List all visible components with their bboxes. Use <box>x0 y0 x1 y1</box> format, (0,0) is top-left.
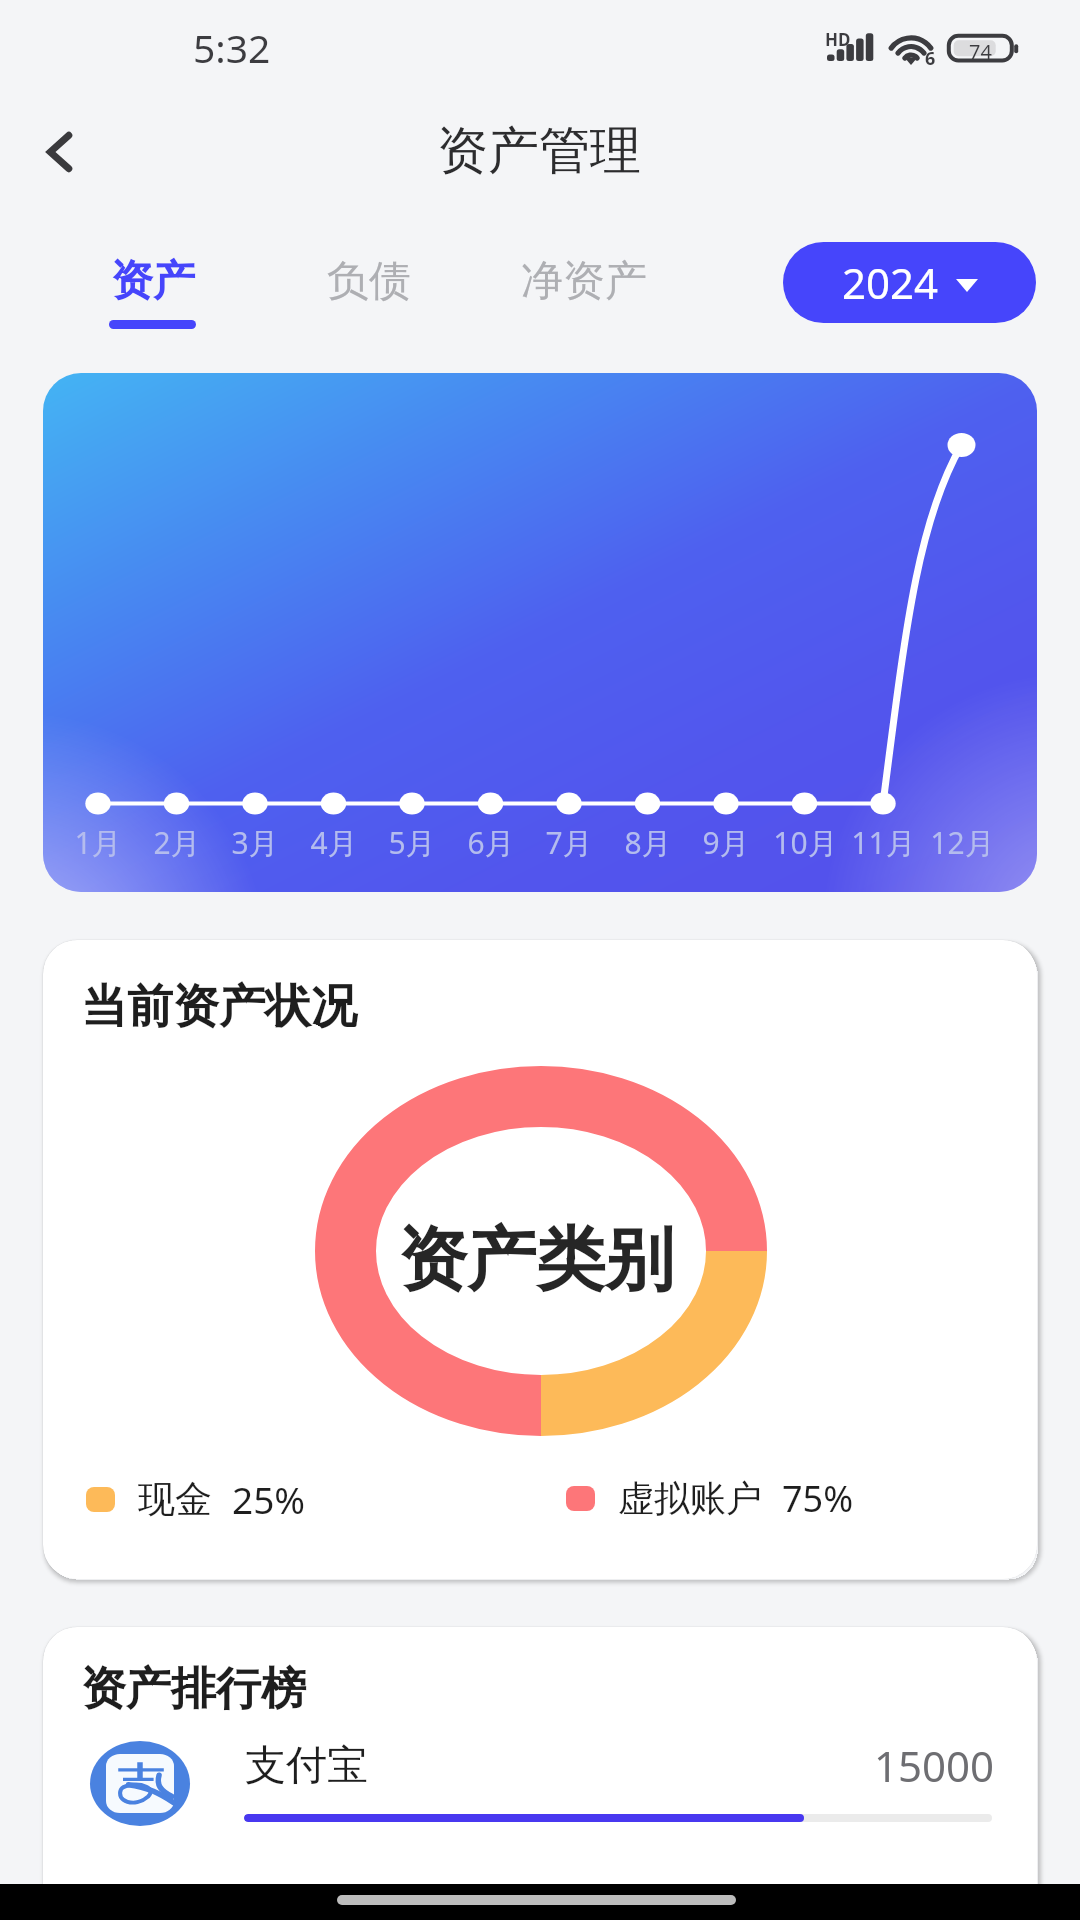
staticText: 11月 <box>851 822 916 863</box>
staticText: 12月 <box>930 822 995 863</box>
staticText: 2024 <box>842 254 939 311</box>
staticText: 8月 <box>624 822 672 863</box>
staticText: 净资产 <box>521 255 647 308</box>
button[interactable]: Back <box>24 116 96 188</box>
staticText: 3月 <box>231 822 279 863</box>
staticText: 当前资产状况 <box>81 978 357 1036</box>
button[interactable]: 支付宝 <box>43 1723 1037 1853</box>
staticText: 74 <box>969 38 992 65</box>
staticText: 9月 <box>702 822 750 863</box>
button[interactable]: 负债 <box>312 240 424 312</box>
button[interactable]: 2024 <box>783 242 1036 323</box>
staticText: 7月 <box>545 822 593 863</box>
button[interactable]: 1月 <box>43 373 1037 892</box>
staticText: 5月 <box>388 822 436 863</box>
staticText: 6月 <box>467 822 515 863</box>
staticText: 1月 <box>74 822 122 863</box>
staticText: HD <box>825 28 851 51</box>
staticText: 资产类别 <box>398 1217 674 1304</box>
staticText: 6 <box>925 46 936 71</box>
button[interactable]: 资产 <box>96 240 208 336</box>
staticText: 资产管理 <box>437 119 641 183</box>
staticText: 10月 <box>773 822 838 863</box>
staticText: 虚拟账户 <box>618 1476 762 1521</box>
staticText: 资产排行榜 <box>81 1661 306 1718</box>
staticText: 2月 <box>153 822 201 863</box>
staticText: 15000 <box>874 1737 995 1794</box>
staticText: 现金 <box>138 1476 212 1523</box>
staticText: 负债 <box>327 255 411 308</box>
staticText: 25% <box>232 1474 306 1524</box>
staticText: 4月 <box>310 822 358 863</box>
staticText: 资产 <box>111 255 195 308</box>
button[interactable]: 净资产 <box>506 240 662 312</box>
staticText: 75% <box>782 1474 854 1523</box>
staticText: 5:32 <box>193 21 271 74</box>
staticText: 支付宝 <box>245 1740 368 1792</box>
